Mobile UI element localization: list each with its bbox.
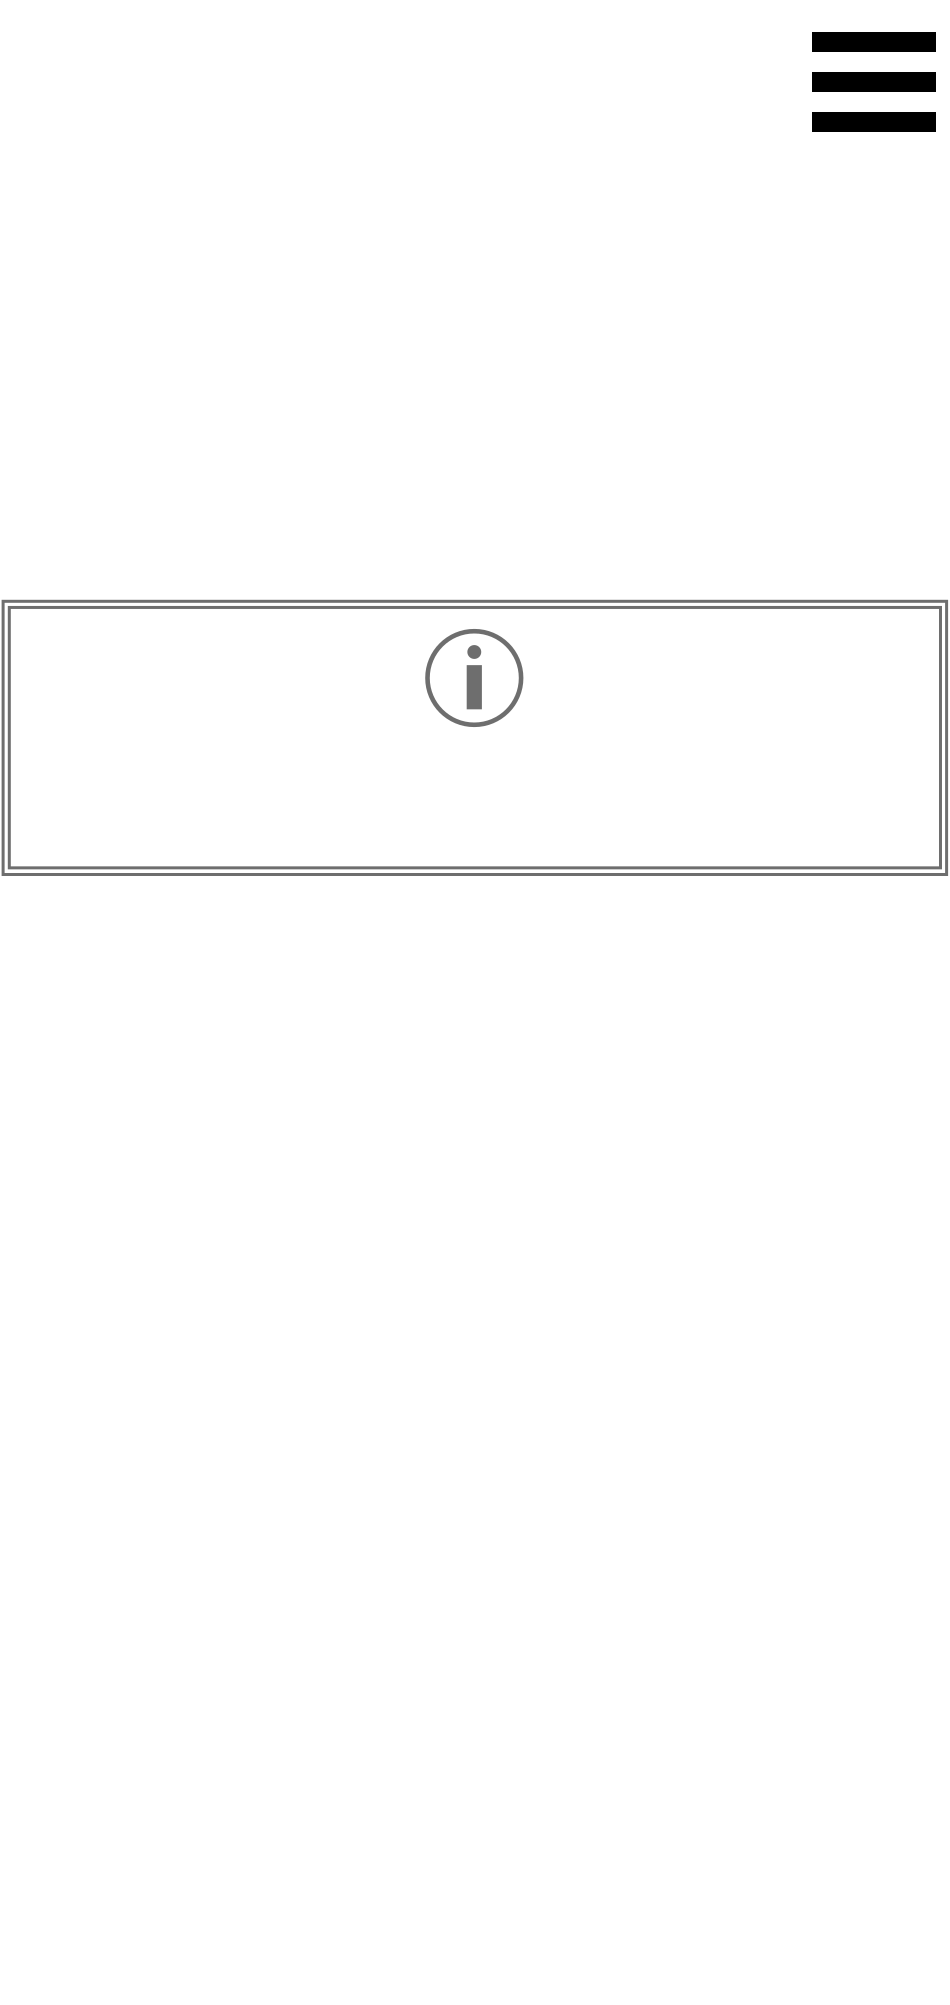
button[interactable]: Menu (812, 32, 936, 132)
